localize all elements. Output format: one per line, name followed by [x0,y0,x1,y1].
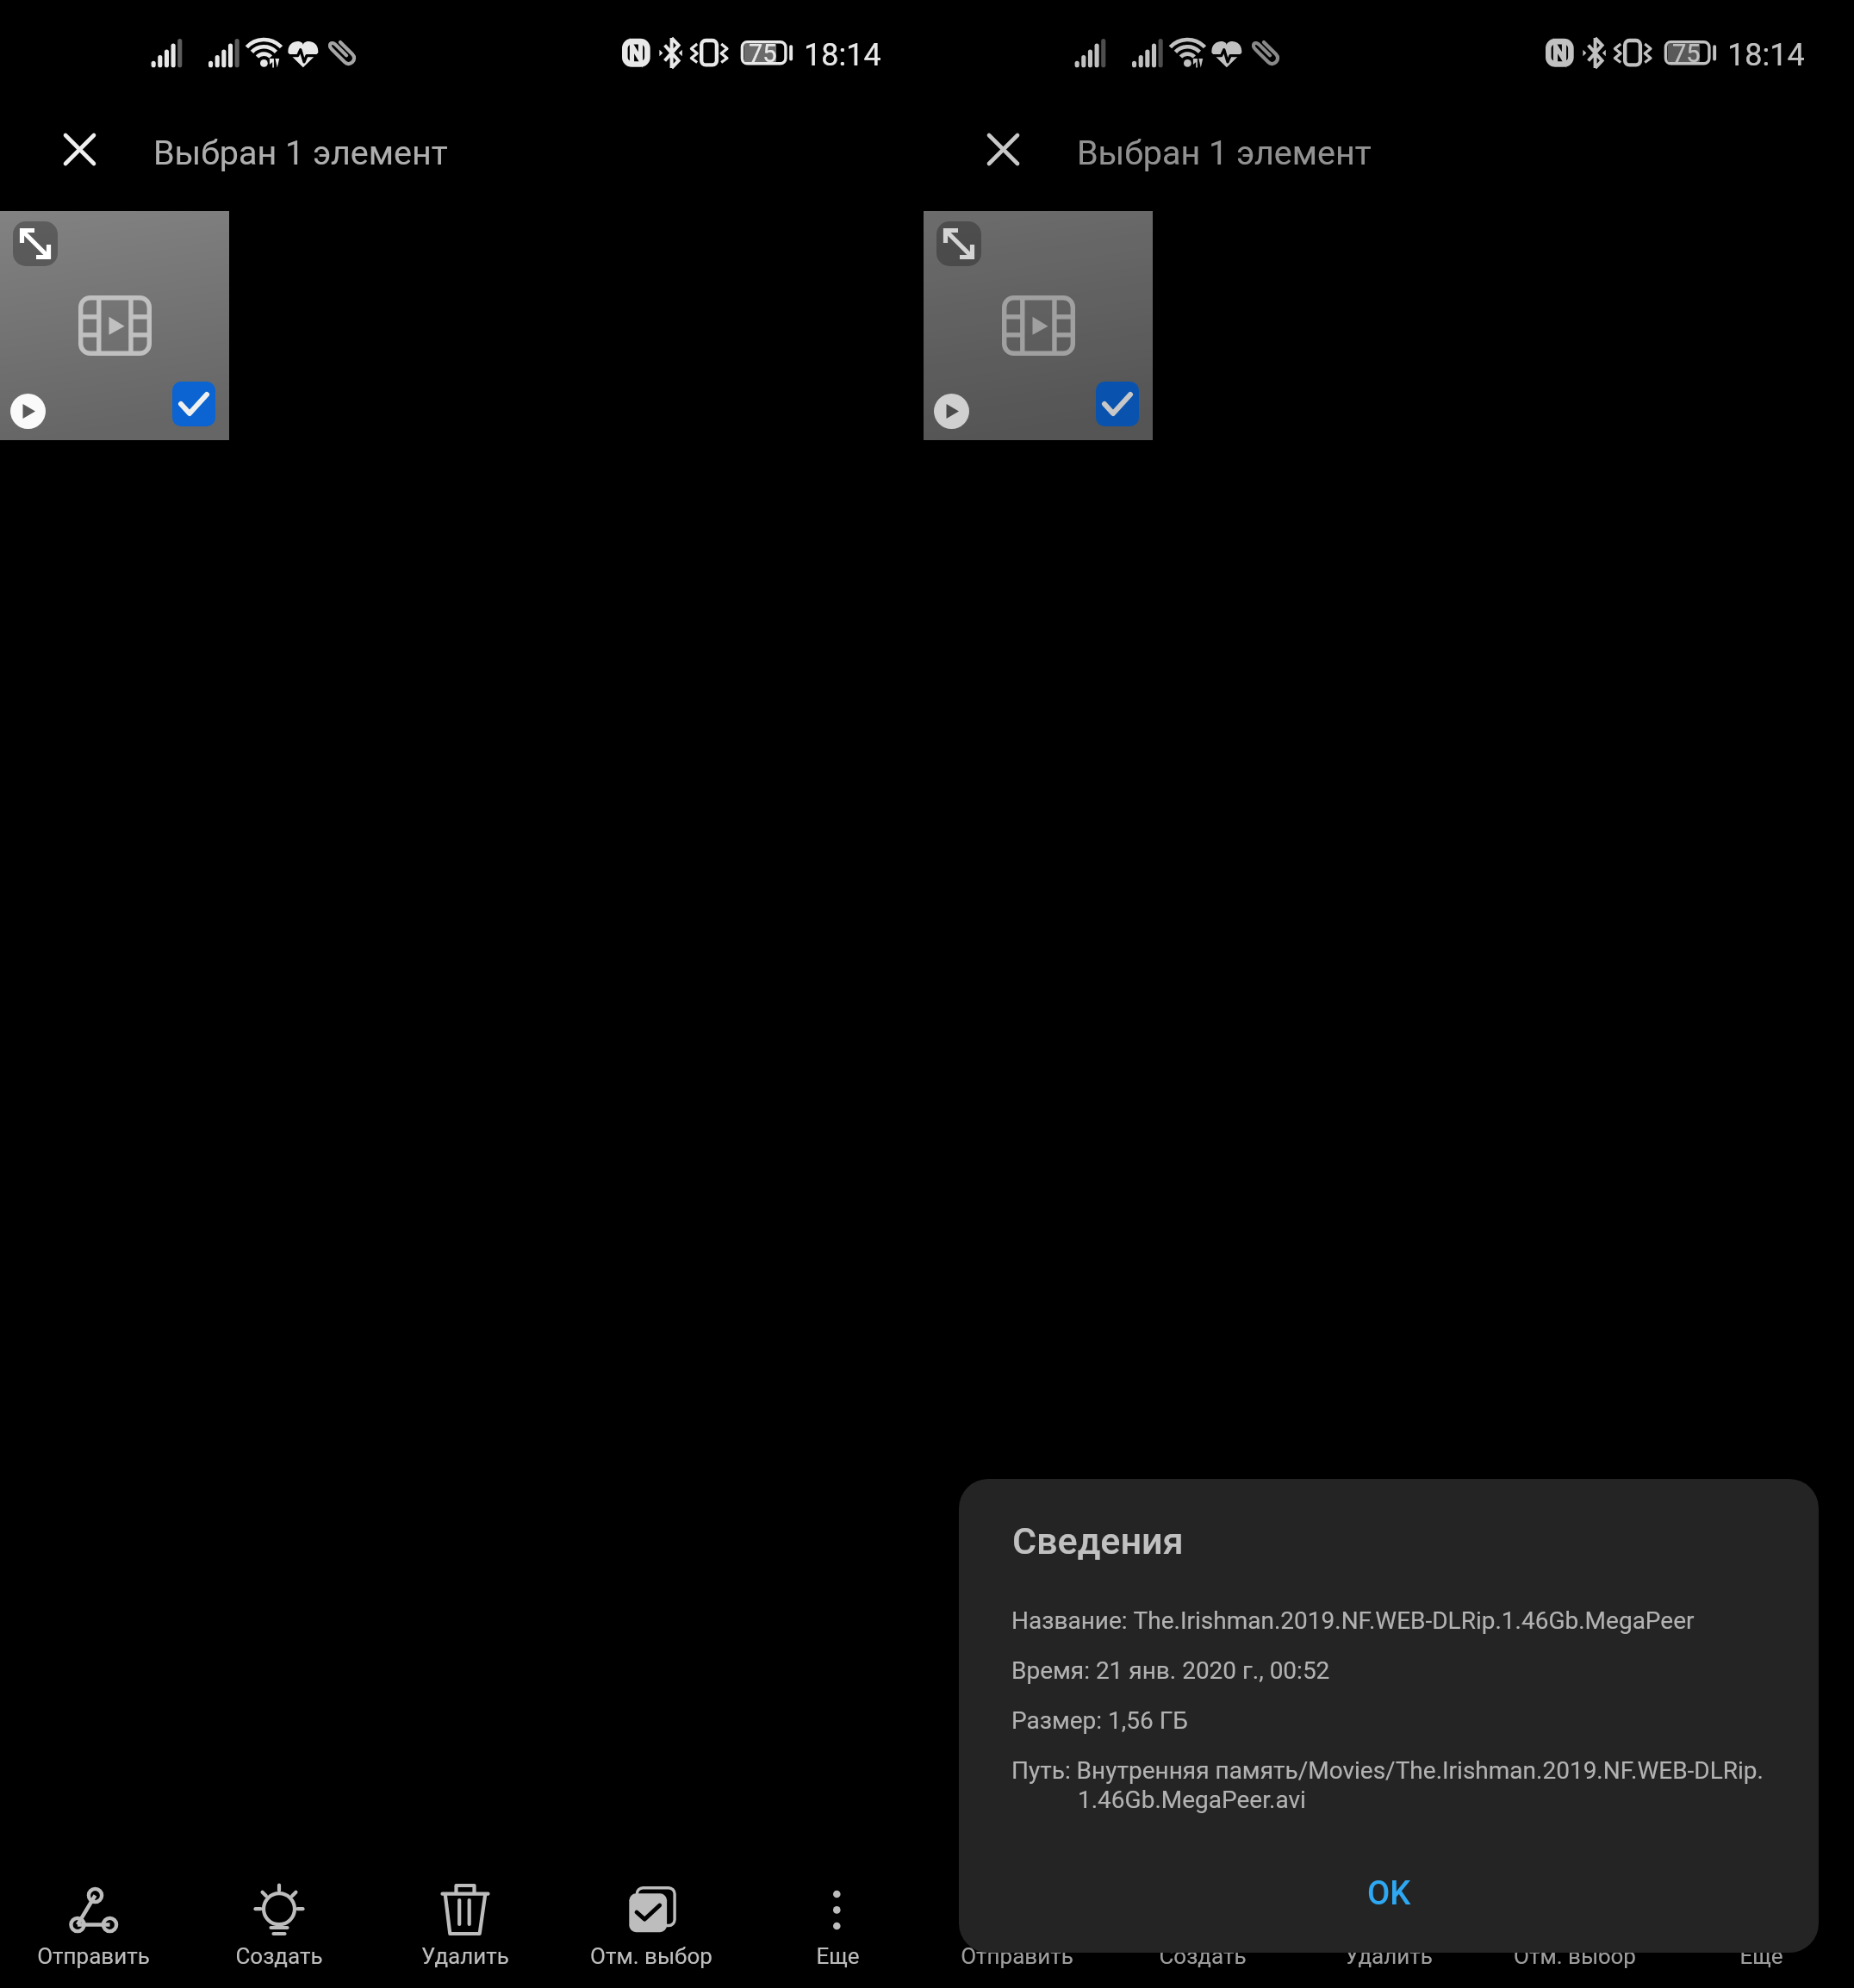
staticText: Удалить [1345,1943,1433,1969]
staticText: 75 [1672,39,1701,68]
staticText: Выбран 1 элемент [1077,133,1372,172]
button[interactable]: Еще [744,1866,930,1988]
staticText: Отм. выбор [590,1943,712,1969]
button[interactable]: Еще [1668,1866,1854,1988]
staticText: Создать [235,1943,323,1969]
button[interactable]: Expand [936,221,981,266]
button[interactable]: Отм. выбор [558,1866,744,1988]
button[interactable]: Selected [172,382,215,426]
button[interactable]: Expand [924,211,1153,440]
staticText: Сведения [1012,1519,1184,1562]
button[interactable]: Отм. выбор [1482,1866,1668,1988]
button[interactable]: Selected [1096,382,1139,426]
staticText: 18:14 [1727,37,1805,73]
staticText: Отправить [961,1943,1073,1969]
staticText: 18:14 [804,37,881,73]
button[interactable]: Play [934,394,969,429]
staticText: Создать [1159,1943,1247,1969]
staticText: Еще [816,1943,860,1969]
button[interactable]: Отправить [924,1866,1110,1988]
staticText: Размер: 1,56 ГБ [1011,1706,1188,1735]
staticText: Удалить [421,1943,509,1969]
staticText: Отправить [37,1943,150,1969]
staticText: OK [1367,1874,1411,1913]
button[interactable]: Отправить [0,1866,186,1988]
button[interactable]: Создать [1110,1866,1296,1988]
button[interactable]: OK [1320,1854,1458,1932]
button[interactable]: Expand [13,221,58,266]
staticText: 1.46Gb.MegaPeer.avi [1078,1786,1306,1814]
staticText: Путь: Внутренняя память/Movies/The.Irish… [1011,1756,1764,1785]
staticText: Выбран 1 элемент [153,133,448,172]
button[interactable]: Play [10,394,46,429]
staticText: Еще [1739,1943,1783,1969]
staticText: 75 [749,39,777,68]
button[interactable]: Удалить [372,1866,558,1988]
button[interactable]: Создать [186,1866,372,1988]
staticText: Название: The.Irishman.2019.NF.WEB-DLRip… [1011,1606,1695,1635]
button[interactable]: Close [972,118,1034,180]
button[interactable]: Expand [0,211,229,440]
staticText: Время: 21 янв. 2020 г., 00:52 [1011,1656,1330,1685]
staticText: Отм. выбор [1514,1943,1636,1969]
button[interactable]: Close [48,118,110,180]
button[interactable]: Удалить [1296,1866,1482,1988]
